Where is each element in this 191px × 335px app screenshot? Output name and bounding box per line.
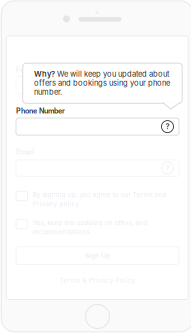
staticText: ? [165, 122, 169, 131]
staticText: Email [16, 147, 34, 156]
button[interactable]: By signing up, you agree to our Terms an… [16, 191, 179, 208]
staticText: ? [165, 163, 169, 172]
button[interactable]: Help [161, 162, 173, 174]
staticText: Yes, keep me updated on offers, and reco… [32, 219, 147, 236]
staticText: By signing up, you agree to our Terms an… [32, 191, 166, 208]
staticText: Phone Number [16, 106, 65, 115]
staticText: Why? We will keep you updated about offe… [34, 69, 170, 96]
staticText: Terms & Privacy Policy [59, 277, 135, 284]
staticText: Sign Up [85, 252, 110, 259]
staticText: Full name [16, 65, 48, 74]
button[interactable]: Yes, keep me updated on offers, and reco… [16, 219, 179, 236]
button[interactable]: Help [161, 121, 173, 133]
button[interactable]: Terms & Privacy Policy [16, 276, 179, 285]
